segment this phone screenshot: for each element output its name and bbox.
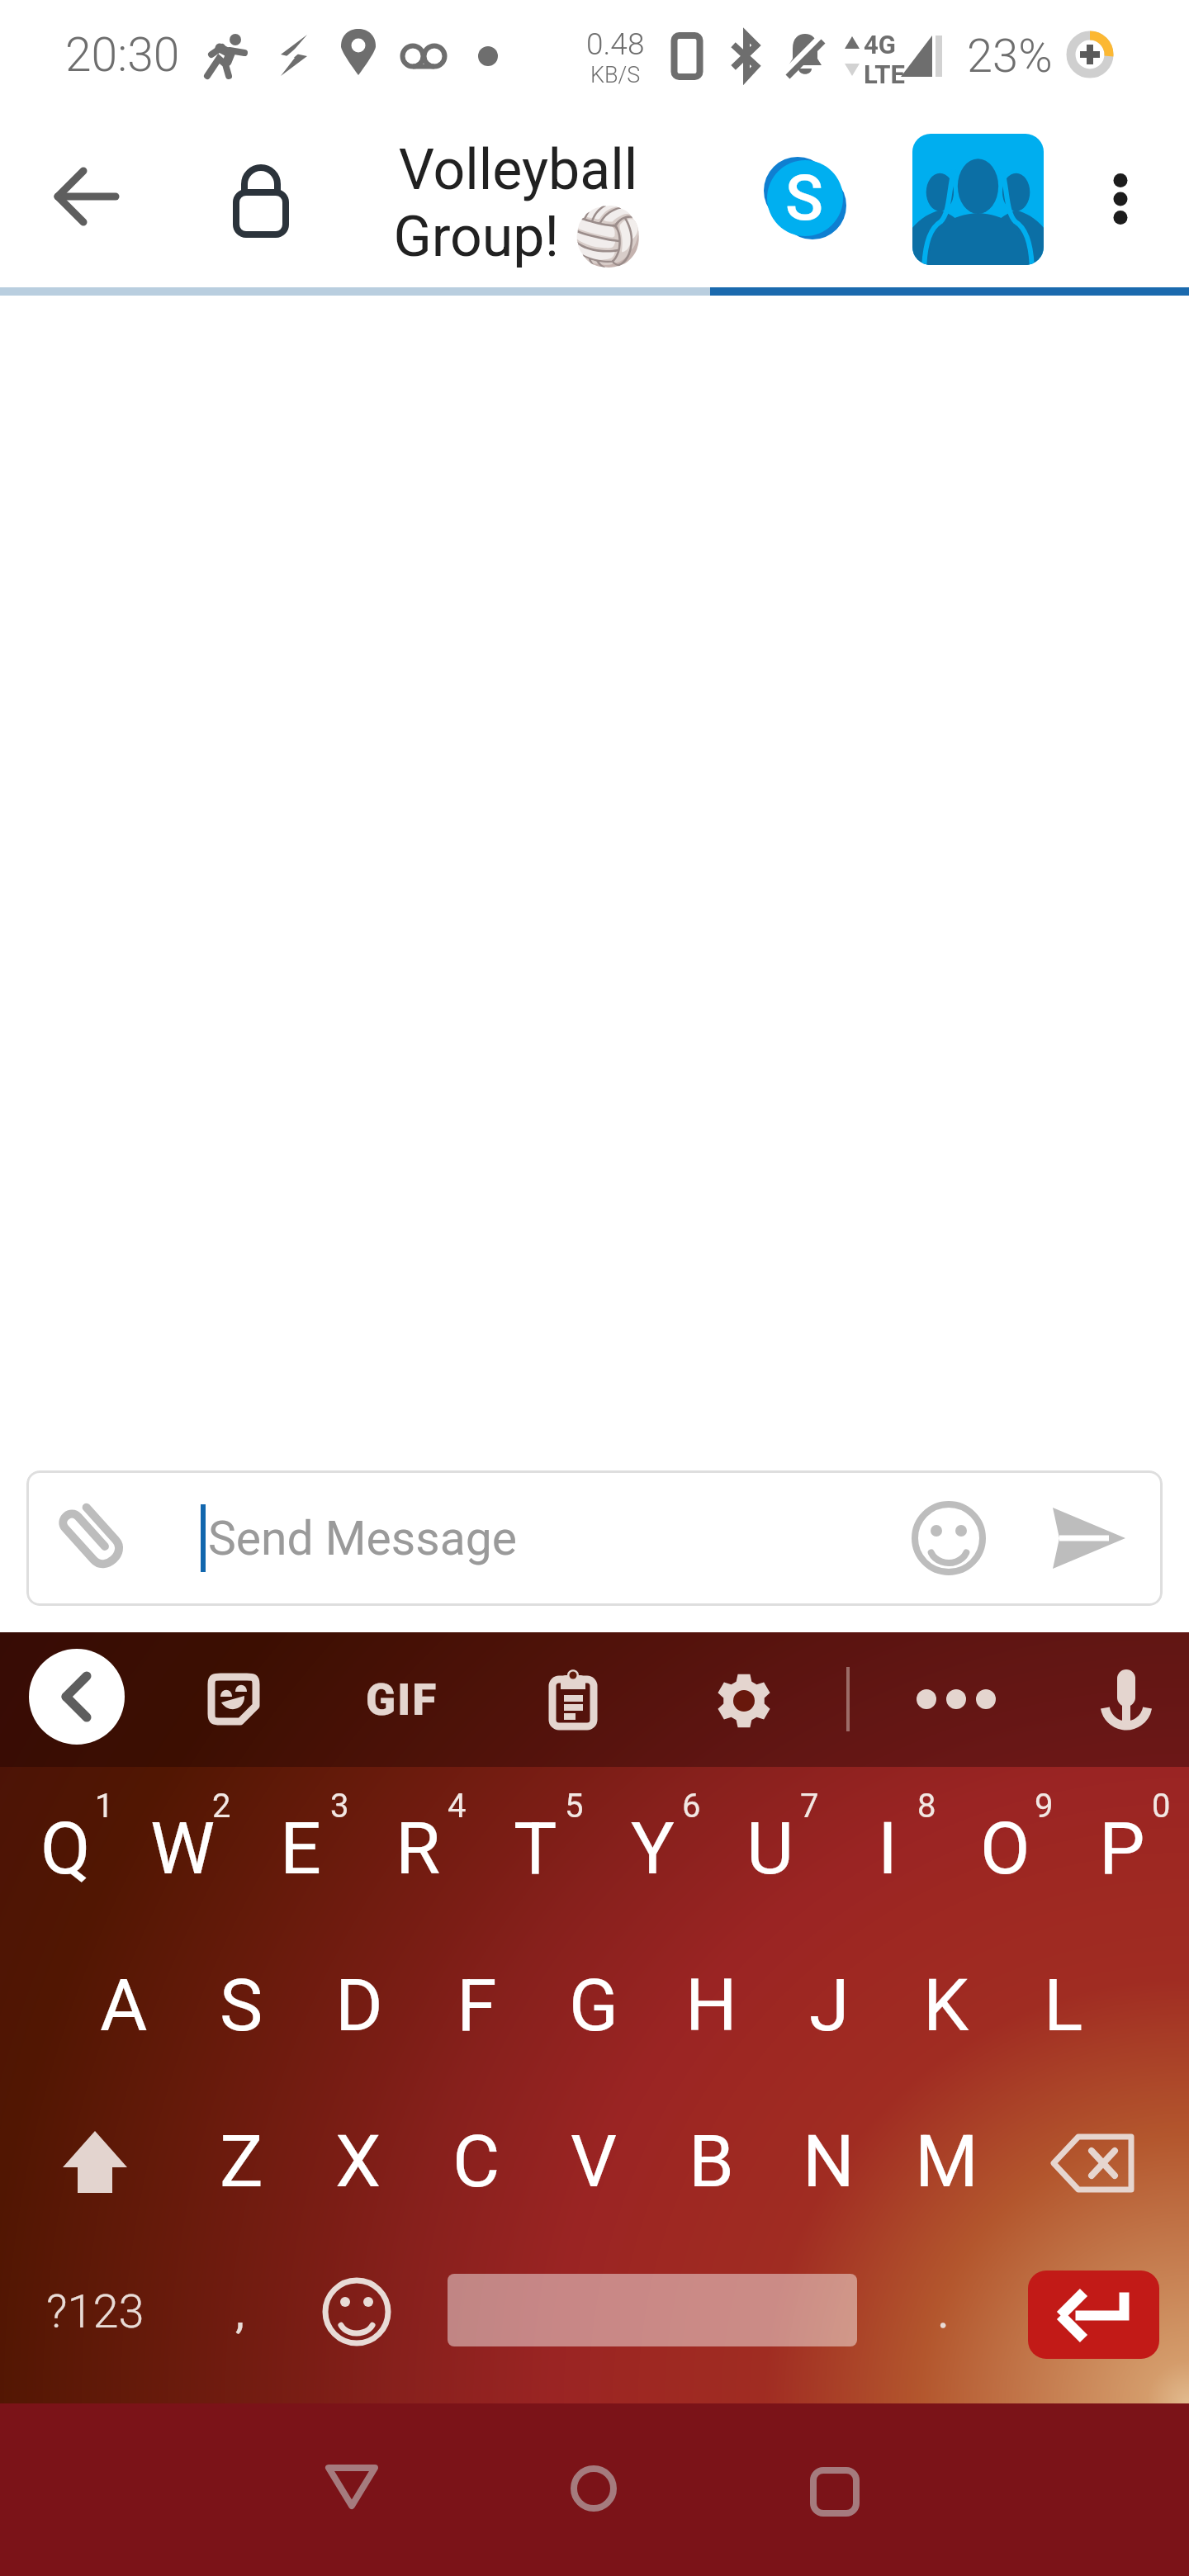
staticText: Send Message bbox=[208, 1511, 517, 1566]
button[interactable]: A bbox=[64, 1930, 183, 2079]
button[interactable]: B bbox=[651, 2086, 770, 2235]
staticText: H bbox=[685, 1963, 737, 2048]
staticText: V bbox=[571, 2119, 618, 2204]
button[interactable]: L bbox=[1004, 1930, 1123, 2079]
staticText: Y bbox=[631, 1806, 675, 1891]
staticText: S bbox=[785, 161, 824, 234]
button[interactable]: Shift bbox=[33, 2088, 157, 2237]
button[interactable]: S bbox=[182, 1930, 301, 2079]
button[interactable]: Q bbox=[6, 1773, 125, 1922]
button[interactable]: F bbox=[417, 1930, 536, 2079]
staticText: J bbox=[809, 1963, 850, 2048]
button[interactable]: ?123 bbox=[21, 2250, 169, 2374]
button[interactable]: D bbox=[300, 1930, 419, 2079]
button[interactable]: Emoji keyboard bbox=[299, 2250, 414, 2374]
staticText: 8 bbox=[917, 1787, 936, 1825]
button[interactable]: Volleyball Group! 🏐 bbox=[311, 121, 724, 286]
staticText: U bbox=[746, 1806, 794, 1891]
staticText: 0 bbox=[1152, 1787, 1171, 1825]
staticText: D bbox=[335, 1963, 383, 2048]
button[interactable]: M bbox=[887, 2086, 1006, 2235]
button[interactable]: Home bbox=[544, 2439, 643, 2538]
button[interactable]: R bbox=[358, 1773, 477, 1922]
staticText: R bbox=[396, 1806, 441, 1891]
button[interactable]: W bbox=[123, 1773, 242, 1922]
staticText: I bbox=[878, 1806, 898, 1891]
staticText: A bbox=[100, 1963, 148, 2048]
button[interactable]: T bbox=[476, 1773, 594, 1922]
button[interactable]: Enter bbox=[1028, 2271, 1159, 2359]
staticText: 7 bbox=[800, 1787, 819, 1825]
staticText: L bbox=[1044, 1963, 1083, 2048]
button[interactable]: Emoji bbox=[903, 1493, 994, 1584]
button[interactable]: Skype call bbox=[756, 149, 855, 248]
button[interactable]: H bbox=[651, 1930, 770, 2079]
button[interactable]: G bbox=[534, 1930, 653, 2079]
staticText: K bbox=[923, 1963, 969, 2048]
staticText: 4 bbox=[448, 1787, 467, 1825]
staticText: 6 bbox=[682, 1787, 701, 1825]
button[interactable]: X bbox=[299, 2086, 418, 2235]
staticText: 3 bbox=[330, 1787, 349, 1825]
staticText: 9 bbox=[1035, 1787, 1054, 1825]
staticText: E bbox=[280, 1806, 322, 1891]
staticText: 0.48 bbox=[586, 26, 645, 62]
button[interactable]: U bbox=[711, 1773, 830, 1922]
staticText: 20:30 bbox=[65, 27, 180, 83]
staticText: N bbox=[803, 2119, 855, 2204]
button[interactable]: V bbox=[534, 2086, 653, 2235]
button[interactable]: Group members bbox=[912, 134, 1044, 265]
staticText: 5 bbox=[565, 1787, 584, 1825]
button[interactable]: K bbox=[887, 1930, 1006, 2079]
button[interactable]: Send bbox=[1044, 1493, 1135, 1584]
staticText: O bbox=[980, 1806, 1030, 1891]
staticText: T bbox=[514, 1806, 557, 1891]
staticText: 1 bbox=[95, 1787, 114, 1825]
button[interactable]: Back bbox=[302, 2437, 401, 2536]
button[interactable]: Space bbox=[448, 2274, 857, 2346]
staticText: B bbox=[689, 2119, 734, 2204]
button[interactable]: E bbox=[241, 1773, 360, 1922]
staticText: C bbox=[452, 2119, 500, 2204]
staticText: GIF bbox=[366, 1674, 438, 1726]
button[interactable]: Z bbox=[182, 2086, 301, 2235]
button[interactable]: J bbox=[770, 1930, 888, 2079]
staticText: P bbox=[1099, 1806, 1145, 1891]
button[interactable]: Recent apps bbox=[785, 2442, 884, 2541]
button[interactable]: Back bbox=[37, 147, 136, 246]
staticText: 4G bbox=[864, 30, 896, 59]
staticText: . bbox=[937, 2285, 950, 2339]
button[interactable]: Attach file bbox=[49, 1493, 140, 1584]
button[interactable]: Y bbox=[593, 1773, 712, 1922]
staticText: 2 bbox=[212, 1787, 231, 1825]
staticText: , bbox=[235, 2285, 245, 2339]
button[interactable]: Backspace bbox=[1031, 2089, 1155, 2237]
staticText: Q bbox=[40, 1806, 91, 1891]
button[interactable]: I bbox=[828, 1773, 947, 1922]
button[interactable]: , bbox=[195, 2250, 286, 2374]
staticText: Z bbox=[220, 2119, 263, 2204]
button[interactable]: Collapse keyboard bbox=[29, 1649, 125, 1745]
staticText: X bbox=[335, 2119, 381, 2204]
staticText: 23% bbox=[967, 29, 1053, 83]
button[interactable]: Encrypted chat bbox=[211, 152, 310, 251]
staticText: G bbox=[569, 1963, 618, 2048]
staticText: ?123 bbox=[46, 2285, 144, 2339]
button[interactable]: N bbox=[769, 2086, 888, 2235]
staticText: F bbox=[457, 1963, 497, 2048]
button[interactable]: More options bbox=[1071, 149, 1170, 249]
staticText: LTE bbox=[864, 59, 905, 89]
button[interactable]: C bbox=[417, 2086, 536, 2235]
staticText: W bbox=[150, 1806, 216, 1891]
button[interactable]: . bbox=[896, 2250, 990, 2374]
button[interactable]: P bbox=[1063, 1773, 1182, 1922]
button[interactable]: Attach file bbox=[26, 1470, 1163, 1606]
staticText: Volleyball Group! 🏐 bbox=[393, 137, 643, 270]
staticText: KB/S bbox=[590, 62, 641, 88]
staticText: S bbox=[220, 1963, 263, 2048]
staticText: M bbox=[915, 2119, 978, 2204]
button[interactable]: O bbox=[945, 1773, 1064, 1922]
